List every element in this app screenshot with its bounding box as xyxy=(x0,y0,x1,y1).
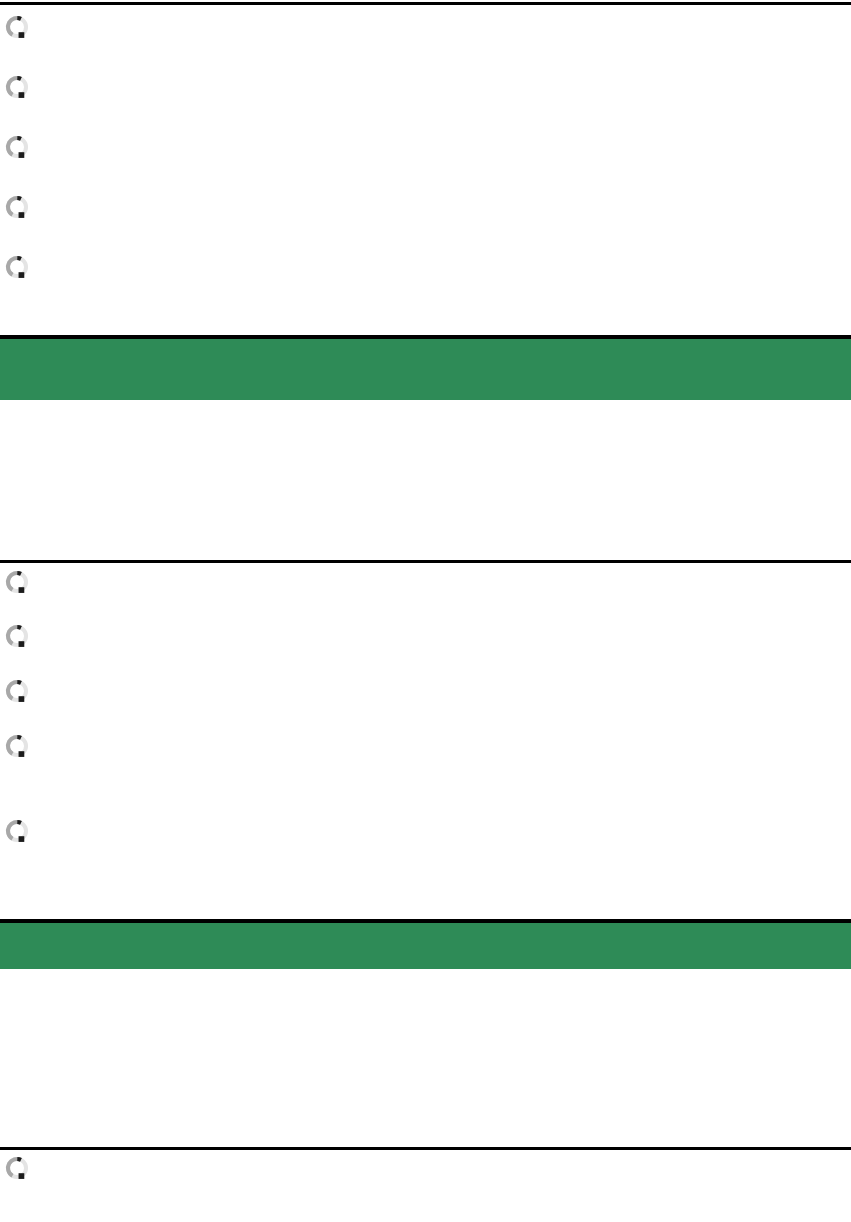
button[interactable]: Item 7 xyxy=(4,623,30,649)
button[interactable]: Item 10 xyxy=(4,818,30,844)
button[interactable]: Item 9 xyxy=(0,730,851,785)
button[interactable]: Item 9 xyxy=(4,733,30,759)
button[interactable]: Item 6 xyxy=(4,569,30,595)
button[interactable]: Item 11 xyxy=(4,1155,30,1181)
button[interactable]: Item 10 xyxy=(0,818,851,868)
button[interactable]: Item 11 xyxy=(0,1155,851,1195)
button[interactable]: Item 1 xyxy=(0,10,851,70)
button[interactable]: Item 3 xyxy=(0,130,851,190)
button[interactable]: Item 5 xyxy=(0,250,851,306)
button[interactable]: Item 5 xyxy=(4,254,30,280)
button[interactable]: Item 4 xyxy=(0,190,851,250)
button[interactable]: Item 7 xyxy=(0,620,851,675)
button[interactable]: Item 8 xyxy=(0,675,851,730)
button[interactable]: Item 2 xyxy=(4,74,30,100)
button[interactable]: Item 3 xyxy=(4,134,30,160)
button[interactable]: Item 1 xyxy=(4,14,30,40)
button[interactable]: Item 8 xyxy=(4,678,30,704)
button[interactable]: Item 4 xyxy=(4,194,30,220)
button[interactable]: Item 2 xyxy=(0,70,851,130)
button[interactable]: Item 6 xyxy=(0,566,851,620)
